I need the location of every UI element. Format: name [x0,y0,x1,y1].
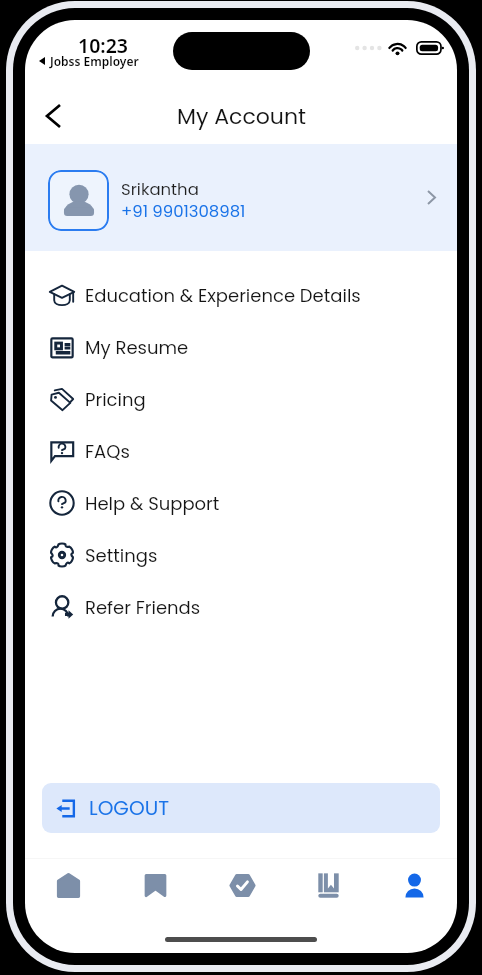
staticText: LOGOUT [89,794,169,822]
button[interactable]: Help & Support [25,477,457,529]
staticText: Settings [85,543,158,568]
button[interactable]: Pricing [25,373,457,425]
staticText: 10:23 [78,32,128,59]
staticText: My Account [177,101,306,132]
button[interactable]: FAQs [25,425,457,477]
button[interactable]: Refer Friends [25,581,457,633]
button[interactable]: Srikantha [25,144,457,251]
button[interactable]: Courses [285,859,371,911]
staticText: Education & Experience Details [85,283,361,308]
staticText: Refer Friends [85,595,201,620]
staticText: Pricing [85,387,146,412]
button[interactable]: Back [30,93,76,139]
staticText: Jobss Employer [50,53,139,69]
staticText: FAQs [85,439,130,464]
button[interactable]: LOGOUT [42,783,440,833]
button[interactable]: Settings [25,529,457,581]
button[interactable]: Home [25,859,112,911]
button[interactable]: Profile [371,859,457,911]
staticText: Srikantha [121,178,199,201]
staticText: +91 9901308981 [121,200,246,223]
staticText: Help & Support [85,491,220,516]
button[interactable]: My Resume [25,321,457,373]
staticText: My Resume [85,335,189,360]
button[interactable]: Saved jobs [112,859,199,911]
button[interactable]: Applied [199,859,285,911]
button[interactable]: Education & Experience Details [25,269,457,321]
